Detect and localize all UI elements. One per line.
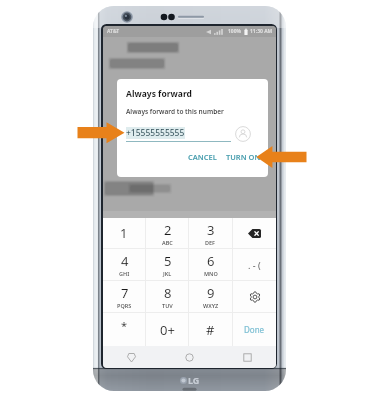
staticText: WXYZ (203, 302, 219, 309)
staticText: 8 (164, 284, 172, 302)
button[interactable]: 8 (146, 281, 188, 312)
staticText: 11:30 AM (250, 28, 273, 35)
staticText: AT&T (107, 28, 120, 35)
staticText: 0+ (160, 321, 175, 339)
button[interactable]: Home (160, 346, 218, 368)
button[interactable]: 5 (146, 249, 188, 280)
staticText: JKL (163, 270, 172, 277)
staticText: 2 (164, 221, 172, 239)
button[interactable]: TURN ON (221, 147, 266, 167)
staticText: 5 (164, 252, 172, 270)
button[interactable]: Keypad settings (233, 281, 276, 312)
staticText: TUV (162, 302, 173, 309)
button[interactable]: 1 (103, 218, 145, 248)
staticText: TURN ON (226, 152, 261, 162)
other: Delete (248, 229, 261, 238)
staticText: 100% (228, 28, 242, 35)
button[interactable]: Recents (218, 346, 276, 368)
staticText: * (121, 318, 128, 333)
staticText: ABC (162, 239, 173, 246)
staticText: MNO (204, 270, 218, 277)
button[interactable]: 9 (189, 281, 232, 312)
button[interactable]: 6 (189, 249, 232, 280)
staticText: 9 (207, 284, 215, 302)
staticText: # (206, 321, 215, 339)
staticText: Always forward (126, 88, 192, 100)
button[interactable]: Back (103, 346, 160, 368)
staticText: Done (244, 324, 265, 335)
button[interactable]: Delete (233, 218, 276, 248)
other: Keypad settings (249, 291, 261, 303)
button[interactable]: * (103, 313, 145, 346)
staticText: 6 (207, 252, 215, 270)
button[interactable]: 0+ (146, 313, 188, 346)
button[interactable]: 4 (103, 249, 145, 280)
staticText: 4 (121, 252, 129, 270)
button[interactable]: Done (233, 313, 276, 346)
button[interactable]: 2 (146, 218, 188, 248)
staticText: 7 (121, 284, 129, 302)
staticText: GHI (119, 270, 130, 277)
button[interactable]: 3 (189, 218, 232, 248)
staticText: 1 (120, 224, 128, 242)
staticText: 3 (207, 221, 215, 239)
button[interactable]: 7 (103, 281, 145, 312)
button[interactable]: Choose contact (235, 126, 251, 142)
staticText: CANCEL (188, 152, 217, 162)
staticText: +15555555555 (126, 127, 185, 139)
button[interactable]: . - ( (233, 249, 276, 280)
button[interactable]: # (189, 313, 232, 346)
staticText: PQRS (117, 302, 132, 309)
staticText: DEF (205, 239, 216, 246)
staticText: . - ( (248, 259, 261, 271)
staticText: LG (188, 374, 200, 386)
staticText: Always forward to this number (126, 107, 224, 116)
button[interactable]: CANCEL (183, 147, 222, 167)
